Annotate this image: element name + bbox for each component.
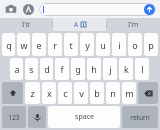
staticText: i	[118, 39, 121, 51]
staticText: o	[132, 39, 138, 51]
button[interactable]: z	[25, 82, 40, 104]
button[interactable]: d	[40, 58, 53, 80]
button[interactable]: a	[10, 58, 23, 80]
button[interactable]: c	[58, 82, 72, 104]
staticText: w	[20, 39, 28, 51]
staticText: y	[85, 39, 90, 51]
staticText: p	[148, 39, 154, 51]
staticText: a	[14, 63, 20, 75]
staticText: h	[91, 63, 97, 75]
button[interactable]: Backspace	[138, 82, 158, 104]
staticText: l	[141, 63, 144, 75]
button[interactable]: Send	[144, 4, 155, 15]
staticText: e	[36, 39, 42, 51]
staticText: n	[110, 87, 116, 99]
button[interactable]: x	[42, 82, 56, 104]
button[interactable]: j	[103, 58, 117, 80]
staticText: I'd	[22, 20, 30, 30]
staticText: u	[100, 39, 106, 51]
button[interactable]: 123	[2, 106, 26, 128]
staticText: I'm	[128, 20, 139, 30]
staticText: j	[109, 63, 112, 75]
button[interactable]: return	[122, 106, 158, 128]
staticText: space	[75, 112, 94, 122]
button[interactable]: Shift	[2, 82, 23, 104]
staticText: f	[60, 63, 64, 75]
button[interactable]: v	[74, 82, 88, 104]
button[interactable]: r	[48, 33, 62, 56]
staticText: x	[47, 87, 52, 99]
button[interactable]: I'd	[0, 18, 52, 31]
button[interactable]: y	[80, 33, 94, 56]
button[interactable]: i	[112, 33, 126, 56]
staticText: s	[29, 63, 34, 75]
button[interactable]: Dictate	[28, 106, 46, 128]
staticText: return	[130, 113, 150, 122]
button[interactable]: p	[144, 33, 158, 56]
staticText: b	[94, 87, 100, 99]
staticText: t	[69, 39, 73, 51]
staticText: k	[124, 63, 129, 75]
button[interactable]: A	[53, 18, 106, 31]
staticText: q	[6, 39, 12, 51]
button[interactable]: h	[87, 58, 101, 80]
button[interactable]: w	[17, 33, 30, 56]
button[interactable]: l	[135, 58, 149, 80]
button[interactable]: s	[25, 58, 38, 80]
staticText: z	[30, 87, 35, 99]
staticText: c	[63, 87, 68, 99]
button[interactable]: e	[32, 33, 46, 56]
button[interactable]: space	[48, 106, 120, 128]
button[interactable]: Send	[39, 3, 156, 16]
staticText: v	[79, 87, 84, 99]
button[interactable]: I'm	[107, 18, 160, 31]
button[interactable]: n	[106, 82, 120, 104]
staticText: d	[44, 63, 50, 75]
button[interactable]: Camera	[4, 2, 18, 16]
button[interactable]: f	[55, 58, 69, 80]
staticText: A	[74, 20, 79, 29]
button[interactable]: Apps	[21, 2, 35, 16]
staticText: 123	[8, 113, 20, 122]
button[interactable]: g	[71, 58, 85, 80]
button[interactable]: b	[90, 82, 104, 104]
button[interactable]: q	[2, 33, 15, 56]
staticText: g	[75, 63, 81, 75]
staticText: r	[53, 39, 57, 51]
button[interactable]: t	[64, 33, 78, 56]
button[interactable]: m	[122, 82, 136, 104]
button[interactable]: u	[96, 33, 110, 56]
button[interactable]: k	[119, 58, 133, 80]
button[interactable]: o	[128, 33, 142, 56]
staticText: m	[125, 87, 134, 99]
